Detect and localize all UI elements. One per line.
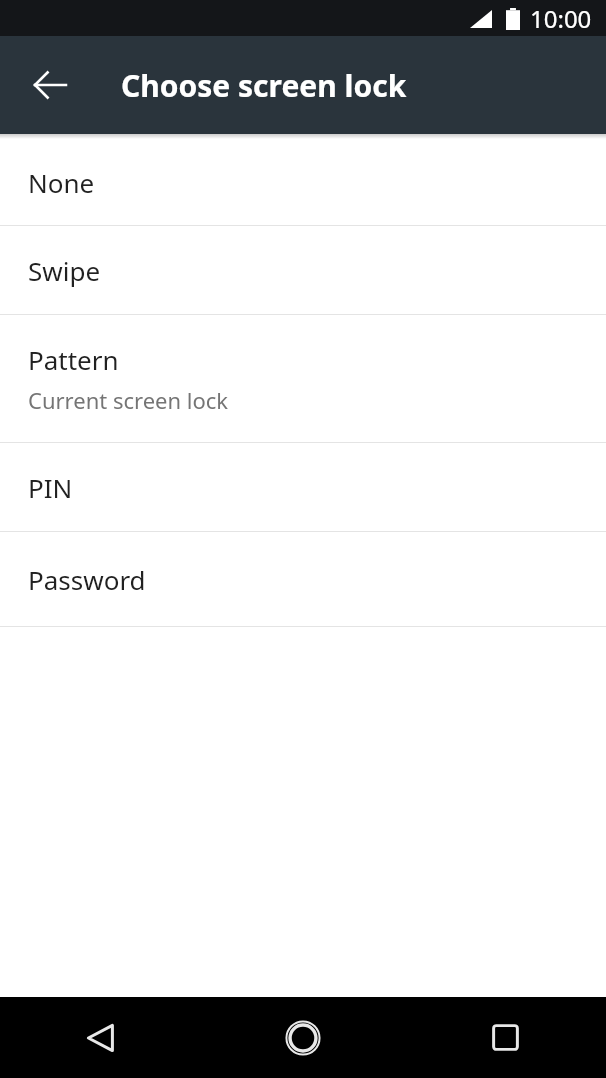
button[interactable]: Back [14, 49, 86, 121]
staticText: Choose screen lock [121, 65, 407, 106]
button[interactable]: Recent apps [404, 997, 606, 1078]
button[interactable]: Home [202, 997, 404, 1078]
staticText: PIN [28, 470, 73, 505]
button[interactable]: Back [0, 997, 202, 1078]
button[interactable]: Pattern [0, 315, 606, 442]
staticText: Current screen lock [28, 385, 229, 415]
button[interactable]: None [0, 139, 606, 225]
staticText: None [28, 165, 95, 200]
button[interactable]: Swipe [0, 226, 606, 314]
staticText: Swipe [28, 253, 101, 288]
button[interactable]: Password [0, 532, 606, 626]
staticText: Password [28, 562, 146, 597]
staticText: Pattern [28, 342, 119, 377]
staticText: 10:00 [530, 2, 592, 35]
button[interactable]: PIN [0, 443, 606, 531]
